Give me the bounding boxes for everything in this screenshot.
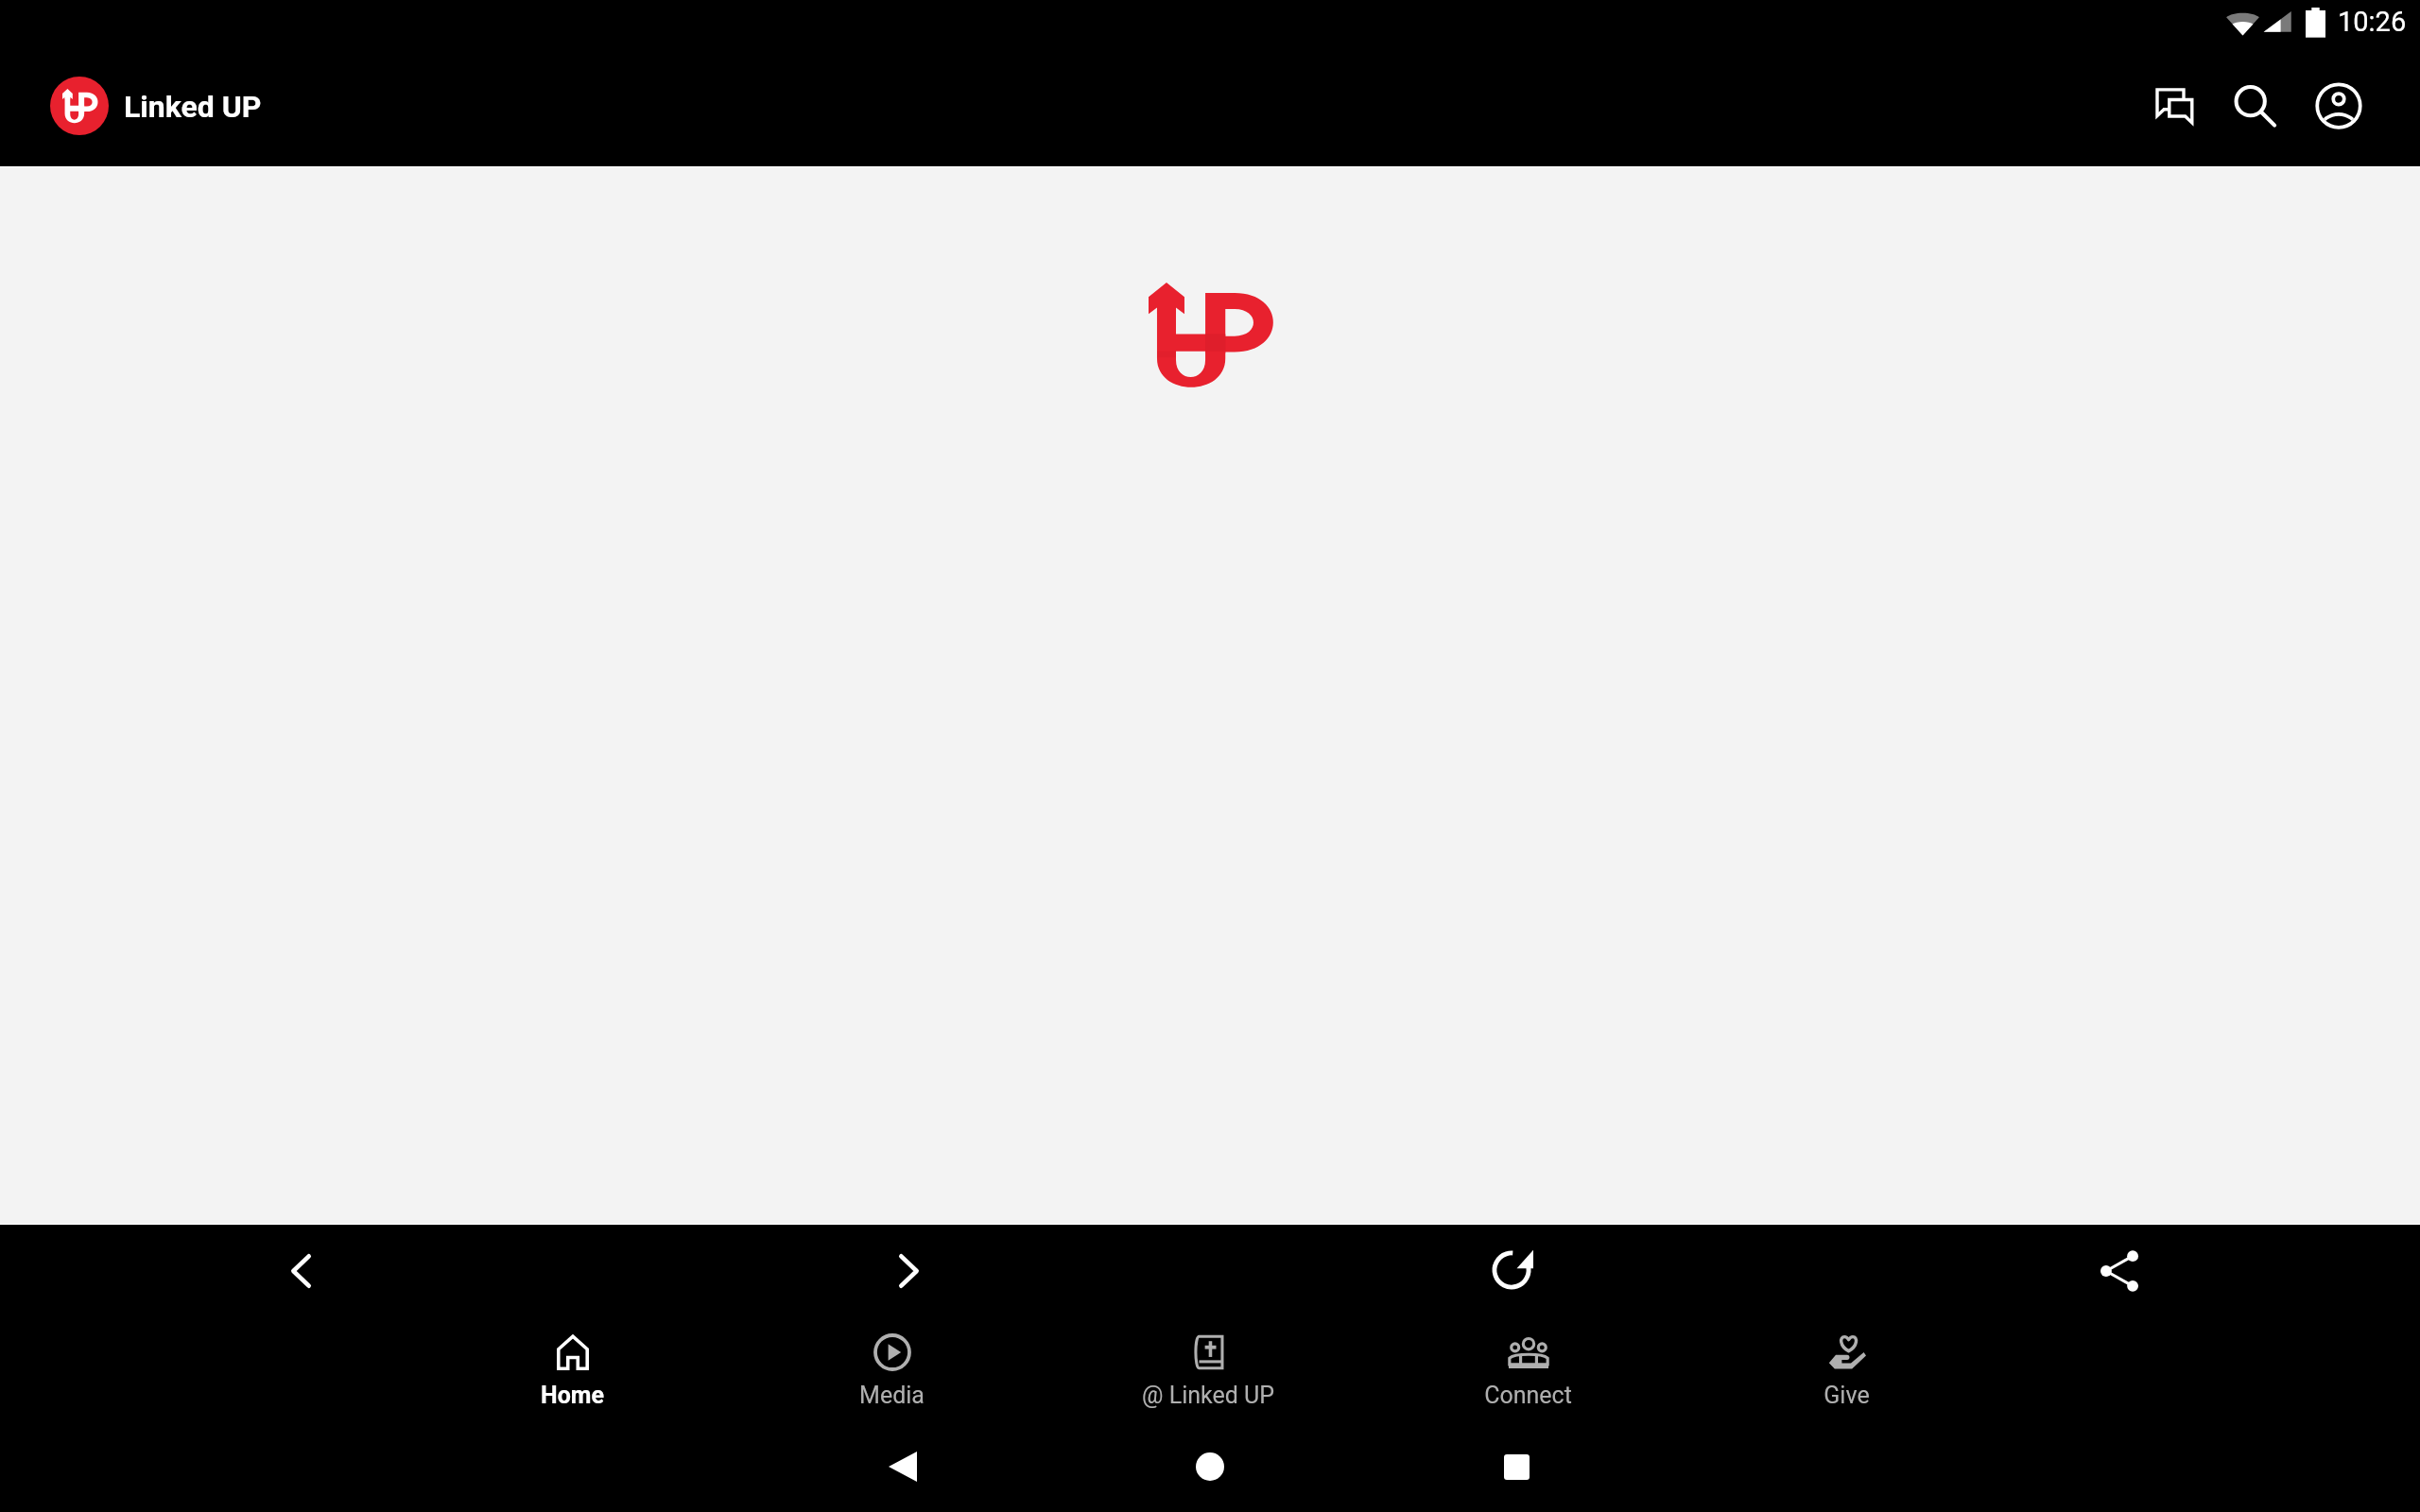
staticText: Linked UP xyxy=(124,89,262,125)
button[interactable]: Back xyxy=(261,1231,340,1311)
button[interactable]: Search xyxy=(2215,66,2294,146)
staticText: @ Linked UP xyxy=(1142,1382,1274,1409)
button[interactable]: Back xyxy=(865,1429,941,1504)
staticText: Give xyxy=(1824,1382,1870,1409)
button[interactable]: Forward xyxy=(869,1231,948,1311)
button[interactable]: Home xyxy=(1172,1429,1248,1504)
staticText: Media xyxy=(859,1382,925,1409)
button[interactable]: Media xyxy=(750,1333,1033,1423)
staticText: Connect xyxy=(1484,1382,1572,1409)
staticText: Home xyxy=(541,1382,604,1409)
button[interactable]: Connect xyxy=(1386,1333,1669,1423)
button[interactable]: Reload xyxy=(1472,1230,1551,1310)
button[interactable]: Recent apps xyxy=(1478,1429,1554,1504)
button[interactable]: @ Linked UP xyxy=(1066,1333,1350,1423)
button[interactable]: Linked UP home xyxy=(50,77,109,135)
staticText: 10:26 xyxy=(2338,6,2407,38)
button[interactable]: Share xyxy=(2080,1231,2159,1311)
button[interactable]: Account xyxy=(2299,66,2378,146)
button[interactable]: Messages xyxy=(2135,66,2214,146)
button[interactable]: Give xyxy=(1704,1333,1988,1423)
button[interactable]: Home xyxy=(430,1333,714,1423)
